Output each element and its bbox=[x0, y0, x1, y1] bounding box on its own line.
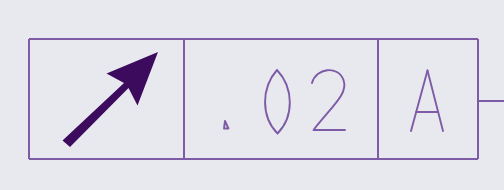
button[interactable]: Direction indicator showing .02 A bbox=[0, 0, 504, 190]
